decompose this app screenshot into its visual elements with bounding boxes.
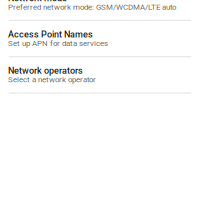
staticText: Network operators	[8, 65, 83, 76]
staticText: Set up APN for data services	[8, 39, 108, 48]
staticText: Select a network operator	[8, 75, 96, 84]
staticText: Preferred network mode: GSM/WCDMA/LTE au…	[8, 2, 176, 12]
button[interactable]: Network mode	[0, 0, 200, 20]
staticText: Access Point Names	[8, 29, 93, 40]
button[interactable]: Access Point Names	[0, 21, 200, 56]
staticText: Network mode	[8, 0, 67, 3]
button[interactable]: Network operators	[0, 57, 200, 92]
